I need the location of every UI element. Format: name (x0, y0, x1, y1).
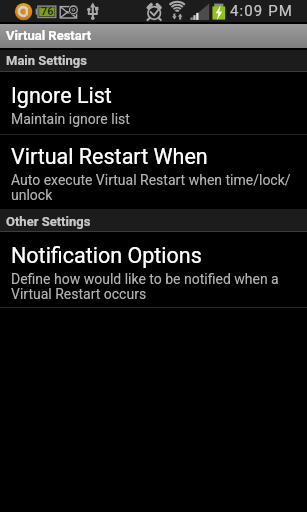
staticText: Auto execute Virtual Restart when time/l… (11, 172, 291, 203)
staticText: Virtual Restart (6, 28, 92, 43)
staticText: Notification Options (11, 243, 202, 268)
button[interactable]: Ignore List (0, 72, 307, 134)
button[interactable]: Notification Options (0, 232, 307, 307)
staticText: 76 (41, 5, 54, 18)
staticText: 4:09 PM (230, 2, 294, 20)
staticText: Main Settings (6, 53, 87, 68)
staticText: Virtual Restart When (11, 144, 208, 169)
staticText: Define how would like to be notified whe… (11, 271, 279, 302)
staticText: Other Settings (6, 214, 91, 229)
staticText: Maintain ignore list (11, 111, 130, 127)
staticText: Ignore List (11, 83, 112, 108)
button[interactable]: Virtual Restart When (0, 135, 307, 209)
